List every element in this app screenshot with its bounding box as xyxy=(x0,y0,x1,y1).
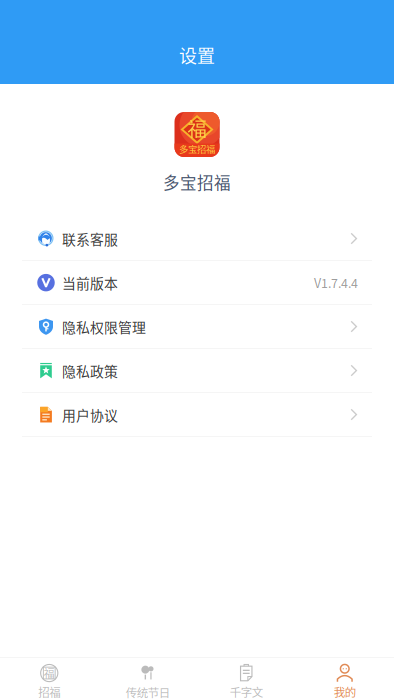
staticText: 福 xyxy=(44,665,55,681)
staticText: 我的 xyxy=(334,683,356,700)
staticText: 多宝招福 xyxy=(163,170,231,194)
staticText: 隐私政策 xyxy=(62,361,118,381)
button[interactable]: 福 xyxy=(0,658,98,700)
staticText: 福 xyxy=(187,114,206,142)
button[interactable]: 传统节日 xyxy=(98,658,197,700)
staticText: V1.7.4.4 xyxy=(314,274,358,292)
button[interactable]: 隐私政策 xyxy=(0,349,394,393)
staticText: 用户协议 xyxy=(62,405,118,425)
staticText: 传统节日 xyxy=(126,684,170,700)
staticText: 多宝招福 xyxy=(179,142,215,155)
button[interactable]: 我的 xyxy=(295,658,394,700)
button[interactable]: 隐私权限管理 xyxy=(0,305,394,349)
button[interactable]: 联系客服 xyxy=(0,217,394,261)
button[interactable]: 当前版本 xyxy=(0,261,394,305)
staticText: 设置 xyxy=(179,42,215,68)
staticText: 联系客服 xyxy=(62,229,118,249)
staticText: 招福 xyxy=(38,683,60,700)
button[interactable]: 用户协议 xyxy=(0,393,394,437)
staticText: 隐私权限管理 xyxy=(62,317,146,337)
staticText: 千字文 xyxy=(230,683,263,700)
button[interactable]: 千字文 xyxy=(197,658,295,700)
staticText: 当前版本 xyxy=(62,273,118,293)
